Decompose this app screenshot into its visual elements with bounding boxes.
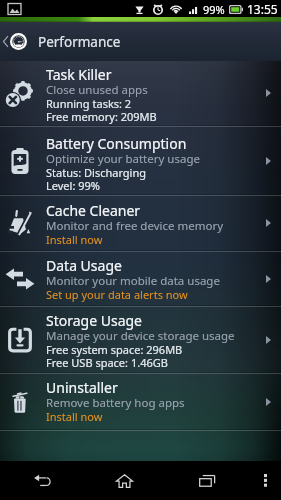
staticText: Install now (46, 232, 103, 247)
staticText: Monitor your mobile data usage (46, 273, 220, 289)
staticText: Install now (46, 409, 103, 424)
staticText: 99% (203, 2, 225, 17)
button[interactable]: Recent apps (166, 461, 249, 500)
staticText: Performance (38, 33, 121, 51)
staticText: Task Killer (46, 65, 112, 84)
staticText: Status: Discharging (46, 165, 147, 180)
staticText: Battery Consumption (46, 134, 187, 153)
button[interactable]: Task Killer (0, 61, 281, 125)
button[interactable]: Uninstaller (0, 374, 281, 429)
staticText: Uninstaller (46, 378, 118, 397)
staticText: Optimize your battery usage (46, 151, 200, 167)
staticText: Storage Usage (46, 311, 143, 330)
button[interactable]: Data Usage (0, 252, 281, 305)
staticText: Level: 99% (46, 178, 100, 193)
button[interactable]: More options (249, 461, 281, 500)
button[interactable]: Home (83, 461, 166, 500)
staticText: Close unused apps (46, 82, 148, 98)
staticText: Manage your device storage usage (46, 328, 235, 344)
staticText: Monitor and free device memory (46, 218, 224, 234)
button[interactable]: Storage Usage (0, 307, 281, 372)
staticText: Running tasks: 2 (46, 96, 132, 111)
staticText: 13:55 (247, 1, 278, 17)
button[interactable]: Navigate up, Performance (0, 22, 281, 61)
staticText: Free memory: 209MB (46, 109, 157, 124)
button[interactable]: Battery Consumption (0, 127, 281, 194)
staticText: Data Usage (46, 256, 122, 275)
staticText: Free system space: 296MB (46, 342, 183, 357)
button[interactable]: Back (0, 461, 83, 500)
staticText: Free USB space: 1.46GB (46, 355, 168, 370)
button[interactable]: Cache Cleaner (0, 196, 281, 250)
staticText: Cache Cleaner (46, 201, 141, 220)
staticText: Set up your data alerts now (46, 287, 188, 302)
staticText: Remove battery hog apps (46, 395, 185, 411)
